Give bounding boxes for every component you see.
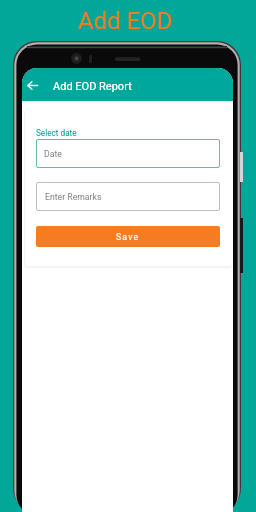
staticText: Select date (36, 128, 77, 138)
staticText: Add EOD (78, 7, 173, 35)
button[interactable]: Save (36, 226, 220, 247)
button[interactable]: Enter Remarks (36, 182, 220, 211)
staticText: Add EOD Report (53, 80, 132, 93)
button[interactable]: Back (22, 75, 43, 96)
staticText: Enter Remarks (45, 192, 102, 202)
button[interactable]: Date (36, 139, 220, 168)
staticText: Save (116, 232, 140, 242)
staticText: Date (44, 149, 62, 159)
